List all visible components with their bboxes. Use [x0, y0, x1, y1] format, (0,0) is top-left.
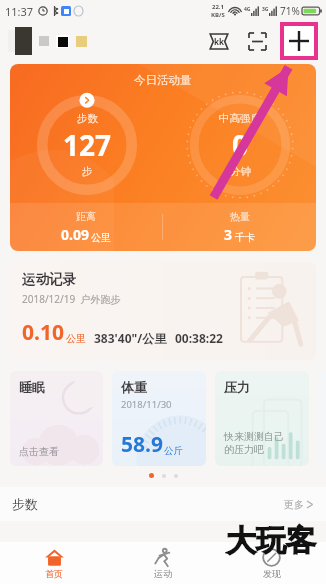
- staticText: 运动: [154, 568, 172, 579]
- staticText: 71%: [280, 4, 300, 18]
- staticText: 体重: [121, 379, 147, 395]
- staticText: 3: [224, 225, 233, 244]
- staticText: KB/S: [211, 11, 225, 19]
- staticText: 公里: [66, 332, 86, 345]
- staticText: 运动记录: [22, 271, 76, 288]
- button[interactable]: 首页: [0, 542, 108, 584]
- staticText: 00:38:22: [175, 330, 223, 346]
- staticText: 0: [232, 126, 249, 164]
- staticText: 快来测测自己 的压力吧: [224, 430, 284, 456]
- staticText: 步数: [77, 112, 98, 125]
- staticText: 2018/11/30: [121, 398, 172, 411]
- staticText: 距离: [76, 210, 96, 223]
- staticText: 首页: [45, 568, 63, 579]
- staticText: 中高强度: [219, 112, 261, 125]
- button[interactable]: 今日活动量: [10, 64, 316, 251]
- staticText: 22.1: [212, 3, 224, 11]
- staticText: 热量: [230, 210, 250, 223]
- staticText: 点击查看: [19, 445, 59, 458]
- staticText: 千卡: [235, 231, 255, 244]
- staticText: 睡眠: [19, 379, 45, 395]
- button[interactable]: Scan: [244, 28, 270, 54]
- button[interactable]: Add: [284, 26, 314, 56]
- staticText: 今日活动量: [134, 73, 192, 87]
- staticText: 383'40"/公里: [94, 330, 167, 346]
- button[interactable]: 步数: [12, 487, 314, 521]
- button[interactable]: 距离: [10, 210, 162, 244]
- staticText: 压力: [224, 379, 250, 395]
- staticText: 58.9: [121, 430, 163, 459]
- button[interactable]: 发现: [217, 542, 326, 584]
- staticText: 2018/12/19 户外跑步: [22, 292, 121, 306]
- staticText: 发现: [263, 568, 281, 579]
- staticText: 步: [82, 165, 93, 178]
- staticText: 更多: [284, 498, 304, 511]
- staticText: 4G: [244, 6, 251, 13]
- staticText: 大玩客: [226, 522, 316, 560]
- staticText: 步数: [12, 496, 38, 512]
- staticText: kk: [214, 36, 224, 47]
- button[interactable]: Profile: [8, 27, 87, 55]
- staticText: 11:37: [5, 4, 34, 19]
- staticText: 0.10: [22, 318, 64, 347]
- button[interactable]: 热量: [163, 210, 316, 244]
- button[interactable]: 运动: [108, 542, 217, 584]
- button[interactable]: 睡眠: [10, 371, 103, 466]
- button[interactable]: 运动记录: [10, 262, 316, 360]
- staticText: 3G: [262, 6, 269, 13]
- staticText: 公斤: [164, 445, 183, 457]
- staticText: 0.09: [61, 225, 89, 244]
- button[interactable]: 压力: [215, 371, 309, 466]
- staticText: 公里: [91, 231, 111, 244]
- staticText: 127: [63, 126, 112, 164]
- button[interactable]: Coupons: [206, 28, 232, 54]
- button[interactable]: 体重: [112, 371, 206, 466]
- staticText: 分钟: [230, 165, 251, 178]
